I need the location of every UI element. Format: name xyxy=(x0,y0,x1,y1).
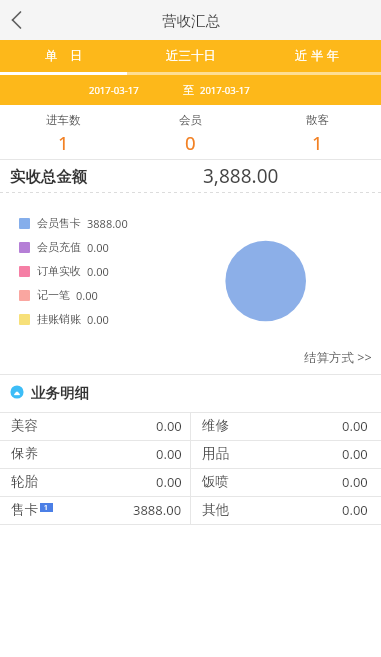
staticText: 1 xyxy=(58,130,69,155)
button[interactable]: 散客 xyxy=(254,105,381,159)
staticText: 挂账销账 xyxy=(37,312,81,326)
button[interactable]: 会员 xyxy=(127,105,254,159)
button[interactable]: 保养 xyxy=(0,441,190,468)
staticText: 0.00 xyxy=(87,312,109,327)
staticText: 3888.00 xyxy=(87,216,128,231)
button[interactable]: 近三十日 xyxy=(127,40,254,75)
staticText: 0.00 xyxy=(87,240,109,255)
staticText: 保养 xyxy=(11,445,38,462)
staticText: 0.00 xyxy=(156,445,182,463)
button[interactable]: 轮胎 xyxy=(0,469,190,496)
staticText: 记一笔 xyxy=(37,288,70,302)
staticText: 3888.00 xyxy=(133,501,182,519)
button[interactable]: 记一笔 xyxy=(19,283,98,307)
staticText: 营收汇总 xyxy=(162,12,220,30)
staticText: 2017-03-17 xyxy=(200,84,250,97)
button[interactable]: 美容 xyxy=(0,413,190,440)
button[interactable]: 会员售卡 xyxy=(19,211,128,235)
staticText: 业务明细 xyxy=(31,384,89,402)
button[interactable]: 结算方式 >> xyxy=(304,349,372,366)
staticText: 散客 xyxy=(306,113,329,127)
staticText: 1 xyxy=(312,130,323,155)
button[interactable]: 2017-03-17 xyxy=(195,80,255,101)
staticText: 会员 xyxy=(179,113,202,127)
staticText: 会员售卡 xyxy=(37,216,81,230)
staticText: 0.00 xyxy=(342,473,368,491)
button[interactable]: 订单实收 xyxy=(19,259,109,283)
staticText: 0.00 xyxy=(76,288,98,303)
staticText: 饭喷 xyxy=(202,473,229,490)
button[interactable]: 挂账销账 xyxy=(19,307,109,331)
staticText: 会员充值 xyxy=(37,240,81,254)
staticText: 维修 xyxy=(202,417,229,434)
button[interactable]: 单 日 xyxy=(0,40,127,75)
staticText: 近 半 年 xyxy=(295,47,340,64)
staticText: 其他 xyxy=(202,501,229,518)
staticText: 美容 xyxy=(11,417,38,434)
staticText: 2017-03-17 xyxy=(89,84,139,97)
staticText: 0.00 xyxy=(342,501,368,519)
staticText: 进车数 xyxy=(46,113,81,127)
button[interactable]: 维修 xyxy=(191,413,381,440)
staticText: 近三十日 xyxy=(166,48,216,64)
staticText: 0.00 xyxy=(156,473,182,491)
button[interactable]: 进车数 xyxy=(0,105,127,159)
staticText: 0.00 xyxy=(342,417,368,435)
staticText: 0.00 xyxy=(87,264,109,279)
button[interactable]: 2017-03-17 xyxy=(84,80,144,101)
staticText: 用品 xyxy=(202,445,229,462)
staticText: 实收总金额 xyxy=(10,167,87,186)
staticText: 结算方式 >> xyxy=(304,349,372,366)
button[interactable]: 会员充值 xyxy=(19,235,109,259)
button[interactable]: 近 半 年 xyxy=(254,40,381,75)
staticText: 0 xyxy=(185,130,196,155)
staticText: 售卡 xyxy=(11,501,38,518)
staticText: 单 日 xyxy=(45,47,83,64)
staticText: 3,888.00 xyxy=(203,163,279,189)
staticText: 0.00 xyxy=(342,445,368,463)
staticText: 0.00 xyxy=(156,417,182,435)
button[interactable]: 售卡 xyxy=(0,497,190,524)
button[interactable]: 用品 xyxy=(191,441,381,468)
button[interactable]: Back xyxy=(0,0,44,40)
staticText: 订单实收 xyxy=(37,264,81,278)
staticText: 1 xyxy=(44,503,49,512)
staticText: 轮胎 xyxy=(11,473,38,490)
button[interactable]: 饭喷 xyxy=(191,469,381,496)
button[interactable]: 其他 xyxy=(191,497,381,524)
staticText: 至 xyxy=(183,83,194,97)
